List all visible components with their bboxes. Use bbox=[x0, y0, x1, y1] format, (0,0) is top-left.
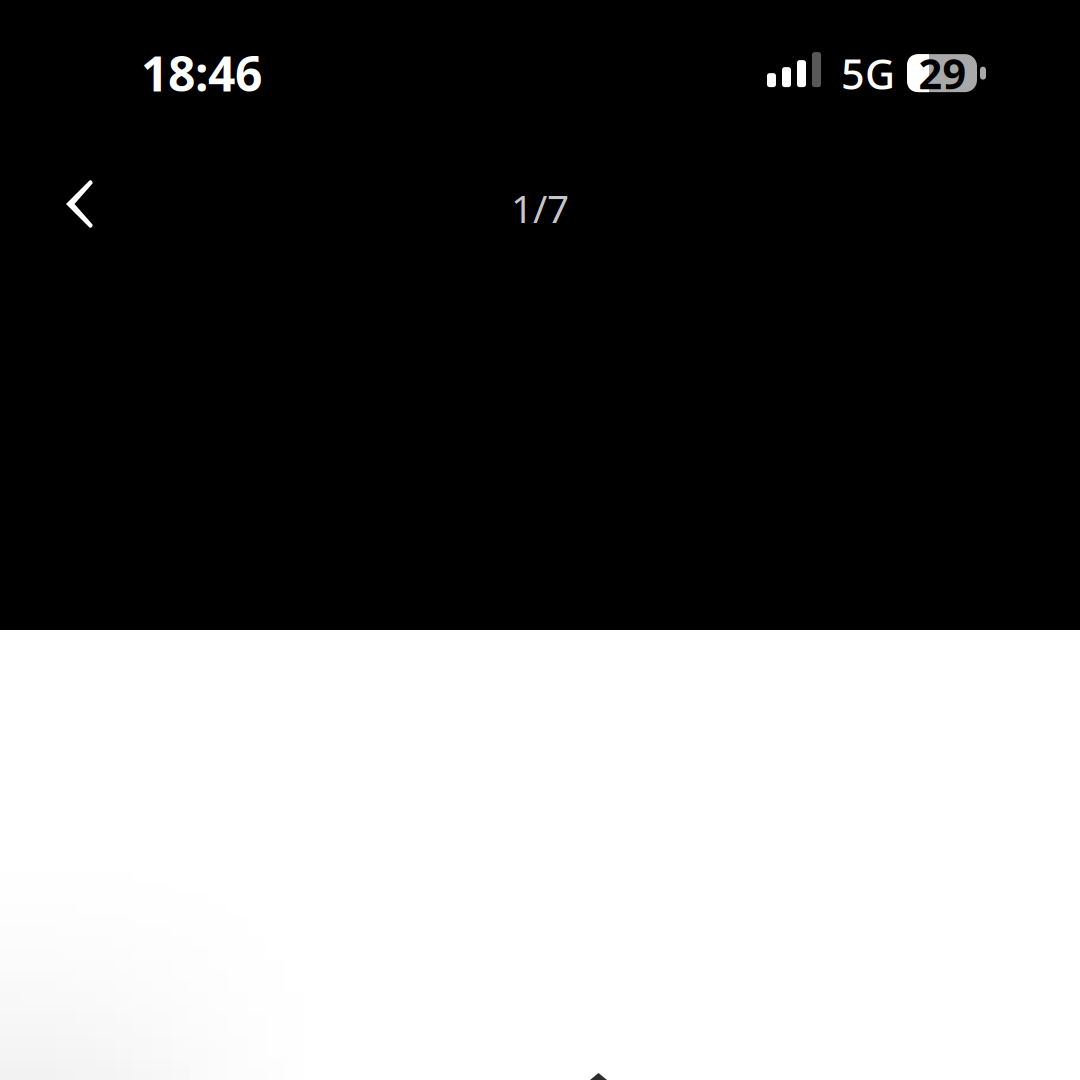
button[interactable]: Back bbox=[34, 157, 137, 251]
staticText: 5G bbox=[841, 46, 895, 101]
staticText: 1/7 bbox=[511, 182, 569, 234]
staticText: 18:46 bbox=[141, 41, 262, 105]
staticText: 29 bbox=[918, 46, 966, 101]
